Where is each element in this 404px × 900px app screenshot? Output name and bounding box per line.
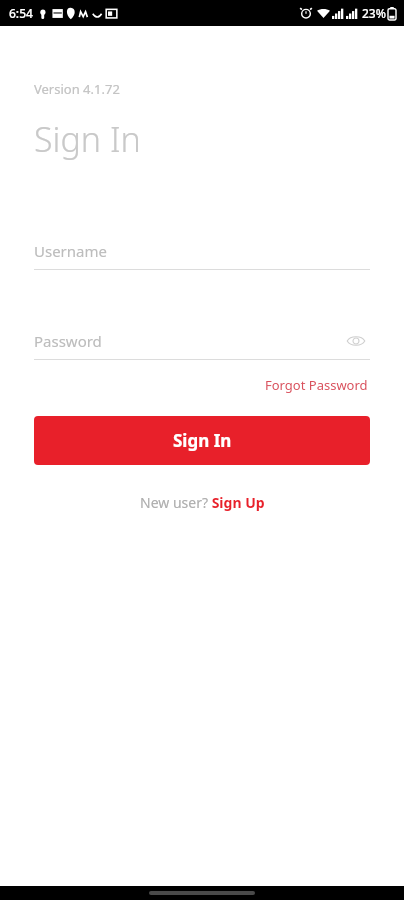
staticText: Sign In bbox=[34, 116, 141, 162]
button[interactable]: Forgot Password bbox=[263, 372, 370, 398]
staticText: Version 4.1.72 bbox=[34, 80, 120, 98]
button[interactable]: New user? Sign Up bbox=[136, 489, 269, 516]
button[interactable]: Sign In bbox=[34, 416, 370, 465]
staticText: Password bbox=[34, 331, 102, 351]
staticText: 23% bbox=[362, 5, 386, 21]
button[interactable]: Show password bbox=[342, 327, 370, 355]
staticText: 6:54 bbox=[9, 5, 33, 21]
staticText: Username bbox=[34, 241, 107, 261]
staticText: Forgot Password bbox=[265, 376, 368, 394]
button[interactable]: Username bbox=[34, 233, 370, 269]
button[interactable]: Password bbox=[34, 323, 370, 359]
staticText: New user? Sign Up bbox=[140, 493, 265, 512]
staticText: Sign In bbox=[173, 429, 232, 452]
